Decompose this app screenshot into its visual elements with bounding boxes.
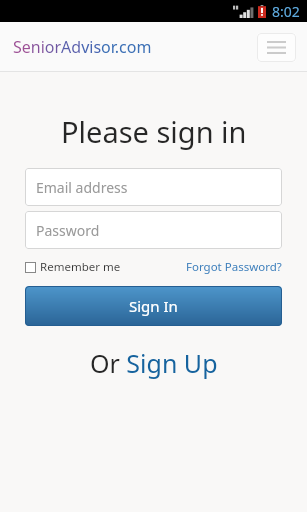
- staticText: Remember me: [40, 259, 121, 275]
- other: Battery low: [258, 5, 266, 18]
- button[interactable]: Remember me: [25, 256, 121, 278]
- button[interactable]: Open navigation menu: [257, 33, 296, 62]
- button[interactable]: Sign In: [25, 286, 282, 326]
- button[interactable]: Email address: [25, 168, 282, 206]
- staticText: Sign In: [129, 296, 178, 316]
- staticText: Password: [36, 221, 100, 240]
- staticText: Please sign in: [61, 112, 247, 151]
- other: 3G signal strength: [233, 5, 253, 18]
- staticText: Or Sign Up: [90, 346, 218, 380]
- staticText: Forgot Password?: [186, 259, 282, 275]
- button[interactable]: SeniorAdvisor.com: [13, 36, 152, 58]
- button[interactable]: Or Sign Up: [0, 346, 307, 380]
- button[interactable]: Password: [25, 211, 282, 249]
- button[interactable]: Forgot Password?: [186, 256, 282, 278]
- staticText: 8:02: [272, 2, 300, 21]
- staticText: Email address: [36, 178, 128, 197]
